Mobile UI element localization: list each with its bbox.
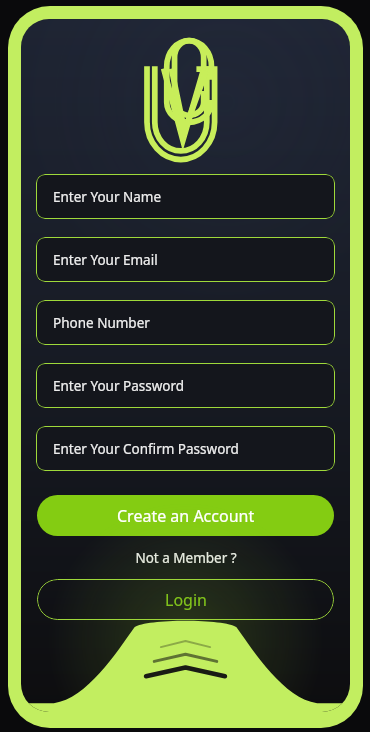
button[interactable]: Enter Your Email (36, 237, 335, 282)
staticText: Enter Your Password (53, 377, 185, 395)
button[interactable]: Enter Your Name (36, 174, 335, 219)
button[interactable]: Swipe up (21, 602, 350, 712)
button[interactable]: Login (37, 579, 334, 620)
button[interactable]: Enter Your Confirm Password (36, 426, 335, 471)
button[interactable]: Enter Your Password (36, 363, 335, 408)
staticText: Not a Member ? (135, 549, 237, 567)
other: App logo (134, 35, 238, 147)
staticText: Phone Number (53, 314, 150, 332)
button[interactable]: Create an Account (37, 495, 334, 536)
staticText: Create an Account (117, 505, 255, 527)
staticText: Enter Your Email (53, 251, 158, 269)
staticText: Login (165, 589, 207, 611)
staticText: Enter Your Name (53, 188, 162, 206)
button[interactable]: Phone Number (36, 300, 335, 345)
staticText: Enter Your Confirm Password (53, 440, 239, 458)
